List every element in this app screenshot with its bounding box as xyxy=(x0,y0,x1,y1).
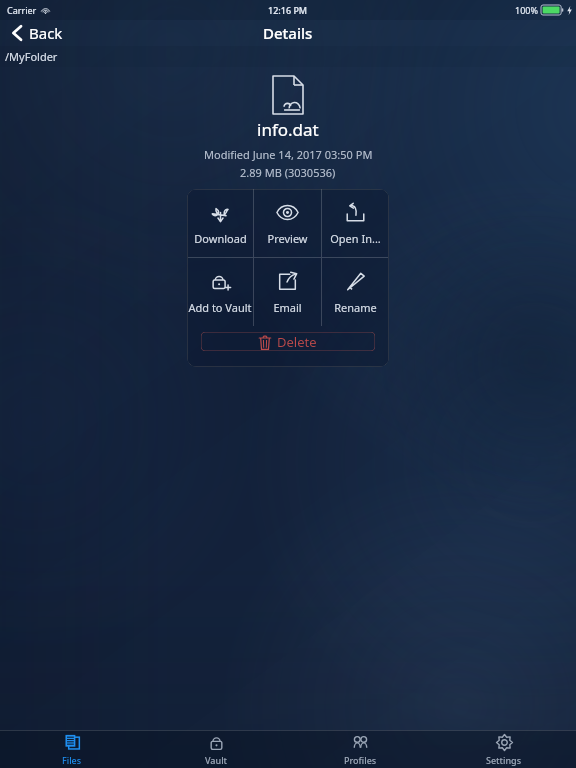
button[interactable]: Settings xyxy=(432,730,576,768)
button[interactable]: Back xyxy=(8,20,67,46)
staticText: Back xyxy=(29,23,63,43)
button[interactable]: Delete xyxy=(201,332,375,351)
staticText: 2.89 MB (3030536) xyxy=(240,165,336,180)
button[interactable]: Email xyxy=(254,258,321,326)
staticText: 12:16 PM xyxy=(268,4,308,16)
staticText: Download xyxy=(194,231,247,246)
staticText: Preview xyxy=(267,231,308,246)
button[interactable]: Add to Vault xyxy=(187,258,253,326)
staticText: Details xyxy=(263,23,313,43)
staticText: /MyFolder xyxy=(5,49,58,64)
staticText: Profiles xyxy=(344,754,377,766)
staticText: Add to Vault xyxy=(188,300,252,315)
staticText: Delete xyxy=(277,333,317,351)
button[interactable]: Download xyxy=(187,189,253,257)
staticText: Rename xyxy=(334,300,377,315)
button[interactable]: Profiles xyxy=(288,730,432,768)
staticText: Carrier xyxy=(7,4,37,16)
button[interactable]: Open In... xyxy=(322,189,389,257)
button[interactable]: Vault xyxy=(144,730,288,768)
button[interactable]: Rename xyxy=(322,258,389,326)
staticText: Settings xyxy=(486,754,522,766)
staticText: Files xyxy=(62,754,82,766)
staticText: Open In... xyxy=(330,231,381,246)
staticText: Vault xyxy=(205,754,228,766)
button[interactable]: Files xyxy=(0,730,144,768)
button[interactable]: Preview xyxy=(254,189,321,257)
staticText: Email xyxy=(273,300,302,315)
staticText: info.dat xyxy=(257,118,319,141)
staticText: Modified June 14, 2017 03:50 PM xyxy=(204,147,373,162)
staticText: 100% xyxy=(515,4,538,16)
